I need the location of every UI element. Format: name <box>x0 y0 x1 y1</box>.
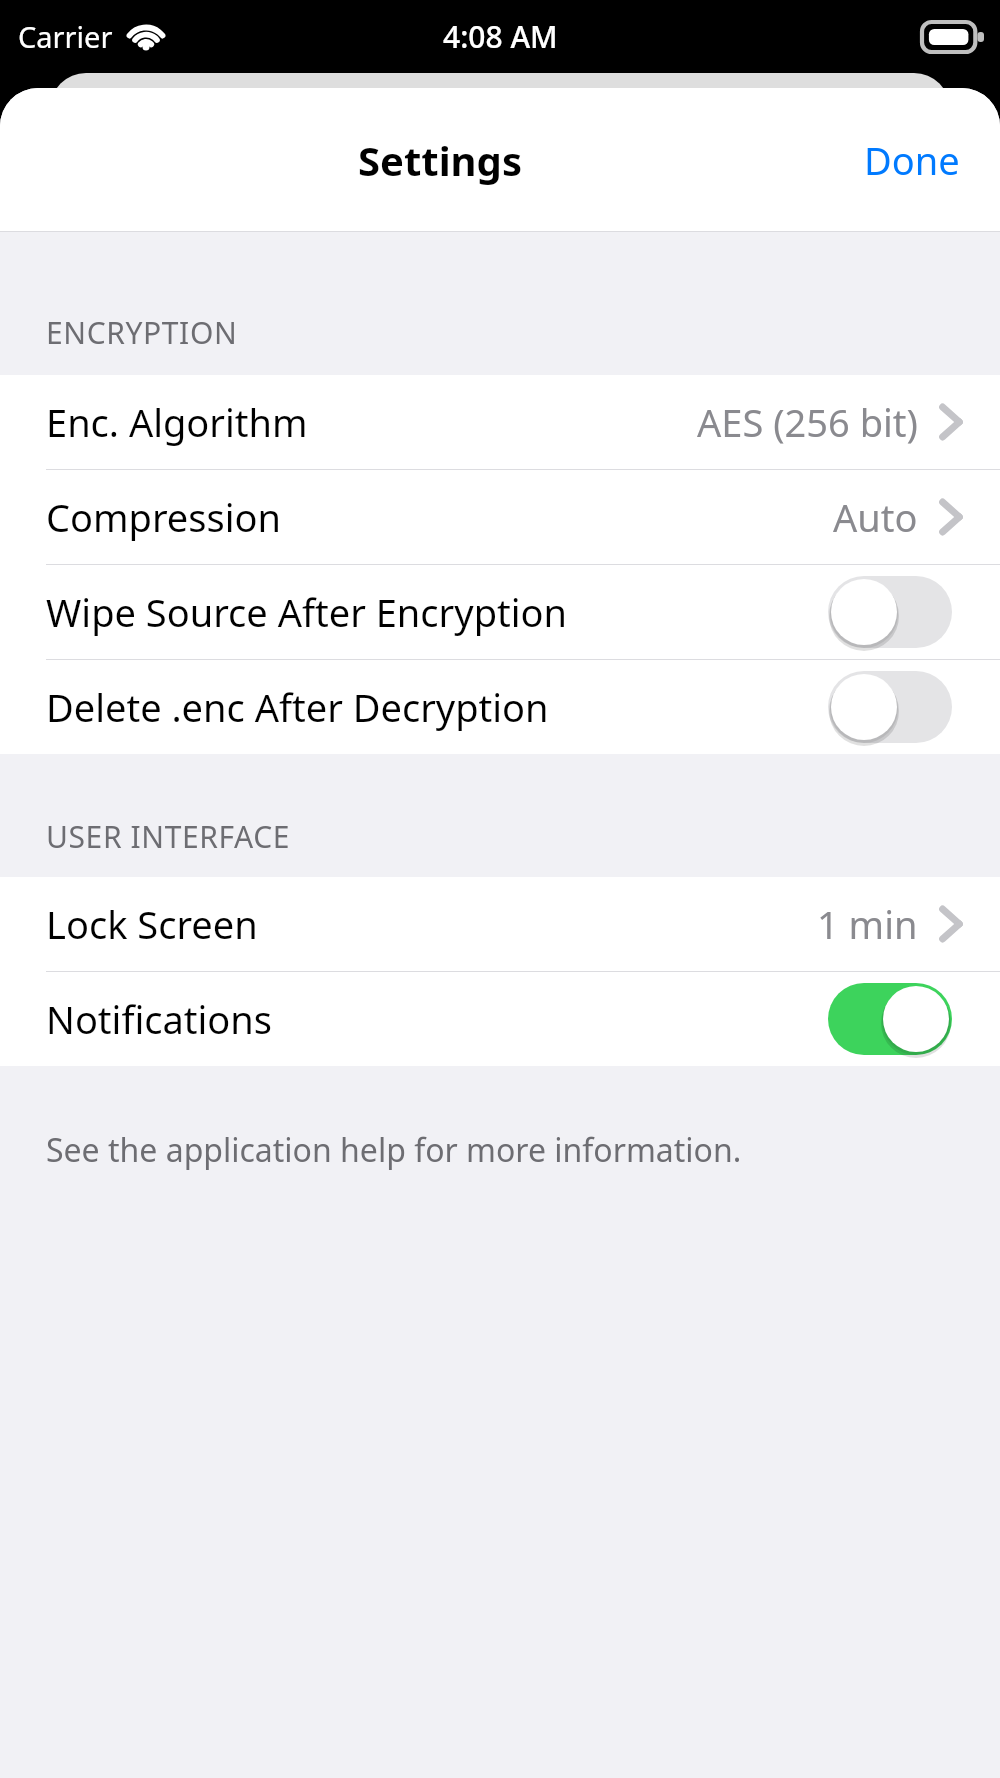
staticText: Done <box>864 134 960 186</box>
button[interactable]: Enc. Algorithm <box>0 375 1000 469</box>
staticText: 1 min <box>817 898 918 950</box>
staticText: ENCRYPTION <box>46 312 238 353</box>
staticText: Delete .enc After Decryption <box>46 681 549 733</box>
button[interactable]: Lock Screen <box>0 877 1000 971</box>
staticText: Carrier <box>18 17 113 56</box>
staticText: Settings <box>358 133 522 187</box>
button[interactable]: Done <box>824 108 1000 212</box>
button[interactable]: Delete .enc After Decryption <box>0 660 1000 754</box>
button[interactable]: Compression <box>0 470 1000 564</box>
staticText: Notifications <box>46 993 273 1045</box>
button[interactable]: Delete .enc After Decryption off <box>828 671 952 743</box>
button[interactable]: Notifications on <box>828 983 952 1055</box>
staticText: Enc. Algorithm <box>46 396 308 448</box>
staticText: Auto <box>833 491 918 543</box>
staticText: Wipe Source After Encryption <box>46 586 568 638</box>
button[interactable]: Wipe Source After Encryption off <box>828 576 952 648</box>
button[interactable]: Wipe Source After Encryption <box>0 565 1000 659</box>
button[interactable]: Notifications <box>0 972 1000 1066</box>
staticText: 4:08 AM <box>443 16 558 57</box>
staticText: See the application help for more inform… <box>46 1128 742 1172</box>
staticText: Compression <box>46 491 281 543</box>
staticText: AES (256 bit) <box>697 396 918 448</box>
staticText: USER INTERFACE <box>46 816 291 857</box>
staticText: Lock Screen <box>46 898 258 950</box>
